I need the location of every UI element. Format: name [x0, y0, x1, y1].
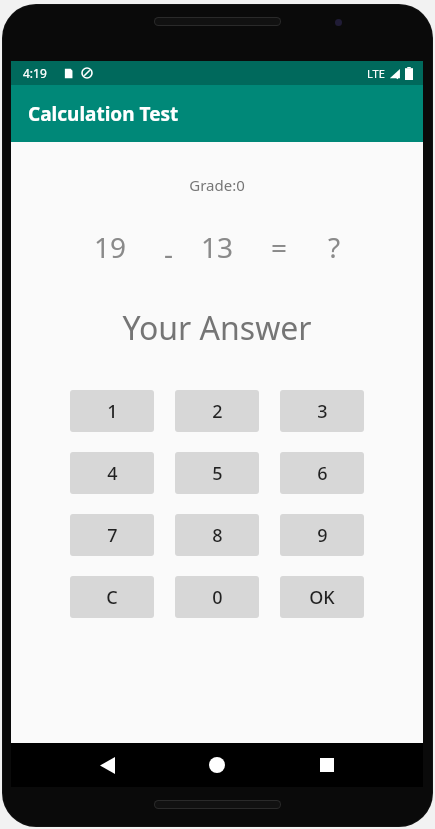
button[interactable]: Recent apps [307, 745, 347, 785]
button[interactable]: 3 [280, 390, 364, 432]
button[interactable]: 1 [70, 390, 154, 432]
staticText: LTE [367, 66, 385, 81]
staticText: ? [328, 228, 341, 266]
staticText: 1 [107, 399, 118, 424]
staticText: Calculation Test [28, 101, 179, 127]
staticText: 5 [212, 461, 223, 486]
staticText: Grade:0 [189, 175, 245, 195]
staticText: 2 [212, 399, 223, 424]
staticText: = [271, 228, 288, 266]
button[interactable]: 2 [175, 390, 259, 432]
staticText: 0 [212, 585, 223, 610]
staticText: 13 [201, 228, 234, 266]
staticText: 19 [94, 228, 127, 266]
button[interactable]: 6 [280, 452, 364, 494]
button[interactable]: 7 [70, 514, 154, 556]
staticText: C [106, 585, 118, 610]
button[interactable]: 4 [70, 452, 154, 494]
button[interactable]: 9 [280, 514, 364, 556]
button[interactable]: C [70, 576, 154, 618]
button[interactable]: 5 [175, 452, 259, 494]
staticText: 7 [107, 523, 118, 548]
staticText: 9 [317, 523, 328, 548]
staticText: 6 [317, 461, 328, 486]
button[interactable]: 0 [175, 576, 259, 618]
staticText: Your Answer [122, 306, 312, 350]
staticText: OK [309, 585, 335, 610]
button[interactable]: OK [280, 576, 364, 618]
button[interactable]: Home [197, 745, 237, 785]
staticText: 8 [212, 523, 223, 548]
button[interactable]: Back [87, 745, 127, 785]
button[interactable]: 8 [175, 514, 259, 556]
staticText: 4 [107, 461, 118, 486]
staticText: 3 [317, 399, 328, 424]
staticText: 4:19 [23, 65, 47, 81]
staticText: - [164, 234, 174, 272]
